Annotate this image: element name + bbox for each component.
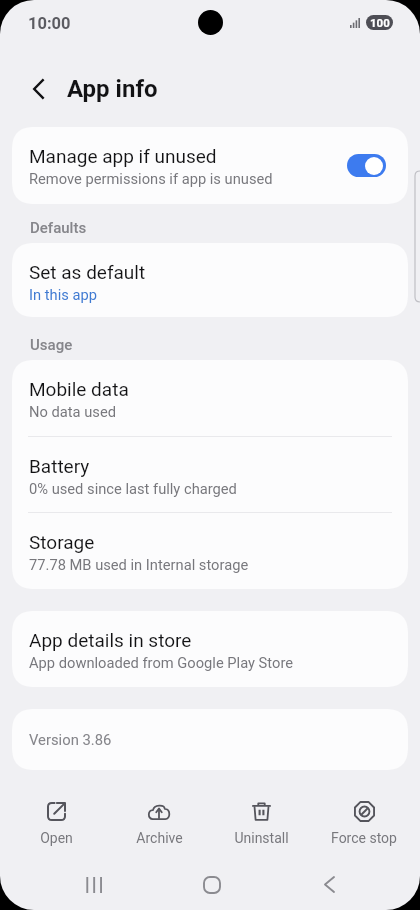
staticText: Archive <box>136 830 183 846</box>
button[interactable]: Set as default <box>12 243 408 317</box>
staticText: Defaults <box>30 219 87 237</box>
button[interactable]: Home <box>186 862 238 907</box>
button[interactable]: Battery <box>12 437 408 512</box>
staticText: Remove permissions if app is unused <box>29 170 273 187</box>
staticText: 100 <box>370 16 390 29</box>
staticText: Manage app if unused <box>29 145 217 167</box>
staticText: Force stop <box>331 830 397 846</box>
staticText: App downloaded from Google Play Store <box>29 654 294 671</box>
staticText: 77.78 MB used in Internal storage <box>29 556 249 573</box>
staticText: Set as default <box>29 261 146 283</box>
button[interactable]: Recent apps <box>68 862 120 907</box>
button[interactable]: Storage <box>12 513 408 589</box>
button[interactable]: Archive <box>113 796 205 846</box>
staticText: In this app <box>29 286 97 303</box>
button[interactable]: Version 3.86 <box>12 709 408 770</box>
button[interactable]: Manage app if unused <box>12 127 408 204</box>
staticText: 10:00 <box>28 14 71 33</box>
staticText: Usage <box>30 336 73 354</box>
button[interactable]: Force stop <box>318 796 410 846</box>
button[interactable]: Back <box>303 862 355 907</box>
button[interactable]: Uninstall <box>215 796 307 846</box>
staticText: Storage <box>29 531 95 553</box>
button[interactable]: App details in store <box>12 611 408 687</box>
staticText: 0% used since last fully charged <box>29 480 237 497</box>
button[interactable]: Open <box>10 796 102 846</box>
staticText: No data used <box>29 403 116 420</box>
staticText: Open <box>40 830 73 846</box>
button[interactable]: Back <box>22 73 54 105</box>
button[interactable]: Mobile data <box>12 360 408 436</box>
staticText: Version 3.86 <box>29 731 112 748</box>
staticText: Battery <box>29 455 90 477</box>
staticText: Mobile data <box>29 378 129 400</box>
button[interactable]: Manage app if unused <box>347 154 386 177</box>
staticText: Uninstall <box>234 830 289 846</box>
staticText: App details in store <box>29 629 192 651</box>
staticText: App info <box>67 75 158 103</box>
